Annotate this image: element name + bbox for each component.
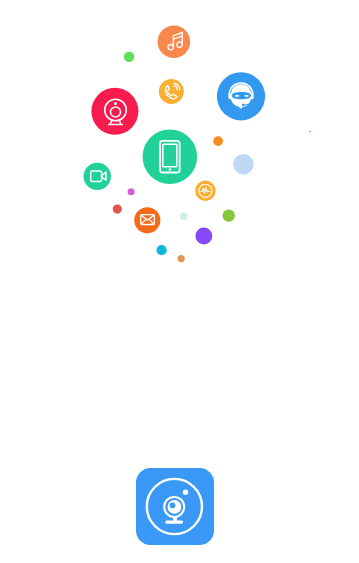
button[interactable]: App logo	[136, 468, 214, 545]
